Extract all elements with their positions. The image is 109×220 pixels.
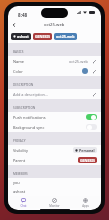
button[interactable]: Edit <box>92 59 97 64</box>
staticText: Chat <box>20 204 27 208</box>
staticText: ashost <box>13 189 26 194</box>
button[interactable]: Chat <box>8 197 39 208</box>
staticText: GENESIS <box>80 158 95 163</box>
button[interactable]: Edit <box>92 69 97 74</box>
button[interactable]: Monitor <box>39 197 70 208</box>
staticText: SUBSCRIPTION <box>13 106 36 110</box>
staticText: oct25-web <box>44 22 65 28</box>
button[interactable]: GENESIS <box>33 33 52 40</box>
staticText: you <box>13 180 20 185</box>
button[interactable]: Edit <box>92 92 97 97</box>
staticText: Background sync <box>13 125 45 130</box>
staticText: oct25-web <box>56 34 75 39</box>
staticText: PRIVACY <box>13 139 26 143</box>
staticText: Monitor <box>49 204 60 208</box>
button[interactable]: Parent <box>8 155 101 165</box>
button[interactable]: GENESIS <box>78 157 97 163</box>
button[interactable]: Name <box>8 56 101 66</box>
staticText: Color <box>13 69 23 74</box>
button[interactable]: Apps <box>70 197 101 208</box>
staticText: DESCRIPTION <box>13 83 34 87</box>
staticText: BASICS <box>13 50 24 54</box>
staticText: ashost <box>17 34 29 39</box>
button[interactable]: Back <box>9 20 18 29</box>
staticText: 8:48 <box>18 12 28 18</box>
staticText: MEMBERS <box>13 172 28 176</box>
staticText: GENESIS <box>35 34 50 39</box>
staticText: Apps <box>82 204 89 208</box>
staticText: oct25-web <box>69 59 88 64</box>
button[interactable]: you <box>8 178 101 187</box>
staticText: Personal <box>79 148 95 153</box>
button[interactable]: Background sync <box>8 122 101 132</box>
button[interactable]: ashost <box>11 33 31 40</box>
staticText: Parent <box>13 158 26 163</box>
button[interactable]: oct25-web <box>54 33 77 40</box>
button[interactable]: ashost <box>8 187 101 196</box>
button[interactable]: Personal <box>73 147 97 153</box>
button[interactable]: Add a description... <box>8 89 101 99</box>
button[interactable]: Color <box>8 66 101 76</box>
staticText: Name <box>13 59 24 64</box>
staticText: Visibility <box>13 148 28 153</box>
button[interactable]: Visibility <box>8 145 101 155</box>
staticText: Push notifications <box>13 115 46 120</box>
button[interactable]: Push notifications <box>8 112 101 122</box>
staticText: Add a description... <box>13 92 49 97</box>
